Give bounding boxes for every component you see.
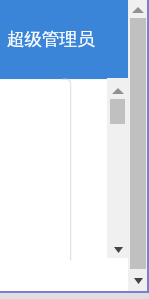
button[interactable]: 超级管理员: [0, 0, 128, 79]
staticText: 超级管理员: [7, 28, 95, 50]
button[interactable]: Scroll page up: [128, 0, 147, 18]
button[interactable]: Scroll page down: [128, 269, 147, 291]
button[interactable]: Scroll list down: [107, 237, 128, 258]
button[interactable]: Scroll list up: [107, 78, 128, 99]
